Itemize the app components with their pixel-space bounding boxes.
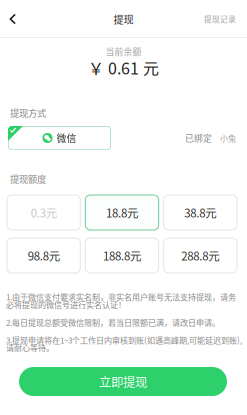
button[interactable]: 38.8元 xyxy=(164,195,237,230)
staticText: 提现 xyxy=(113,12,133,26)
button[interactable]: 288.8元 xyxy=(164,238,237,273)
staticText: 3.提现申请将在1~3个工作日内审核到账(如遇高峰期,可能延迟到账),请耐心等待… xyxy=(6,334,242,353)
staticText: ￥ 0.61 元 xyxy=(88,56,159,79)
staticText: 0.3元 xyxy=(31,204,57,221)
button[interactable]: 立即提现 xyxy=(19,367,227,396)
staticText: 已绑定 xyxy=(185,132,212,144)
staticText: 1.由于微信支付要求实名制，非实名用户账号无法支持提现，请务必将提现的微信号进行… xyxy=(6,291,236,310)
staticText: 98.8元 xyxy=(28,247,60,264)
staticText: 小兔 xyxy=(220,132,236,144)
button[interactable]: 微信 xyxy=(8,126,111,150)
staticText: 288.8元 xyxy=(181,247,219,264)
button[interactable]: 18.8元 xyxy=(85,195,159,230)
staticText: 2.每日提现总额受微信限制，若当日限额已满，请改日申请。 xyxy=(6,316,220,328)
staticText: 提现记录 xyxy=(204,13,236,25)
button[interactable]: Back xyxy=(0,4,26,34)
staticText: 38.8元 xyxy=(184,204,216,221)
staticText: 188.8元 xyxy=(103,247,141,264)
staticText: 微信 xyxy=(56,131,76,145)
staticText: 提现额度 xyxy=(10,172,46,185)
staticText: 立即提现 xyxy=(99,372,147,390)
button[interactable]: 0.3元 xyxy=(7,195,80,230)
button[interactable]: 98.8元 xyxy=(7,238,80,273)
staticText: 18.8元 xyxy=(106,204,138,221)
staticText: 提现方式 xyxy=(10,106,46,119)
button[interactable]: 188.8元 xyxy=(85,238,159,273)
button[interactable]: 提现记录 xyxy=(204,4,247,34)
staticText: 当前余额 xyxy=(105,45,141,58)
